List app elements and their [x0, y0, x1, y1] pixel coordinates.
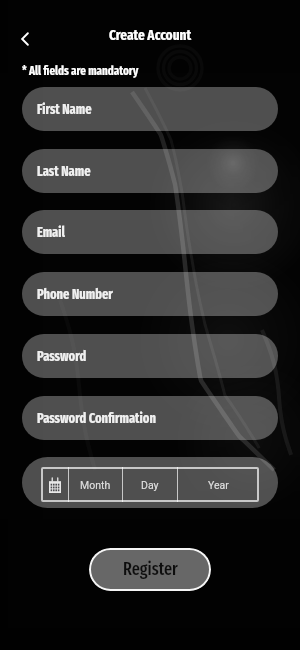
- button[interactable]: Year: [178, 467, 258, 502]
- button[interactable]: Month: [69, 467, 122, 502]
- staticText: Phone Number: [37, 286, 113, 302]
- staticText: First Name: [37, 101, 92, 117]
- button[interactable]: Back: [11, 25, 39, 53]
- staticText: Last Name: [37, 163, 91, 179]
- button[interactable]: Phone Number: [22, 272, 278, 316]
- button[interactable]: Register: [89, 548, 211, 591]
- staticText: Month: [80, 479, 111, 491]
- staticText: Password Confirmation: [37, 410, 156, 426]
- staticText: Day: [141, 479, 159, 491]
- button[interactable]: First Name: [22, 87, 278, 131]
- button[interactable]: Email: [22, 210, 278, 254]
- button[interactable]: Password Confirmation: [22, 396, 278, 440]
- staticText: Password: [37, 348, 87, 364]
- button[interactable]: Password: [22, 334, 278, 378]
- button[interactable]: Choose date: [41, 467, 68, 502]
- staticText: * All fields are mandatory: [22, 64, 139, 78]
- button[interactable]: Day: [123, 467, 177, 502]
- button[interactable]: Last Name: [22, 149, 278, 193]
- staticText: Create Account: [109, 27, 192, 44]
- staticText: Email: [37, 224, 65, 240]
- staticText: Register: [123, 559, 178, 580]
- staticText: Year: [208, 479, 229, 491]
